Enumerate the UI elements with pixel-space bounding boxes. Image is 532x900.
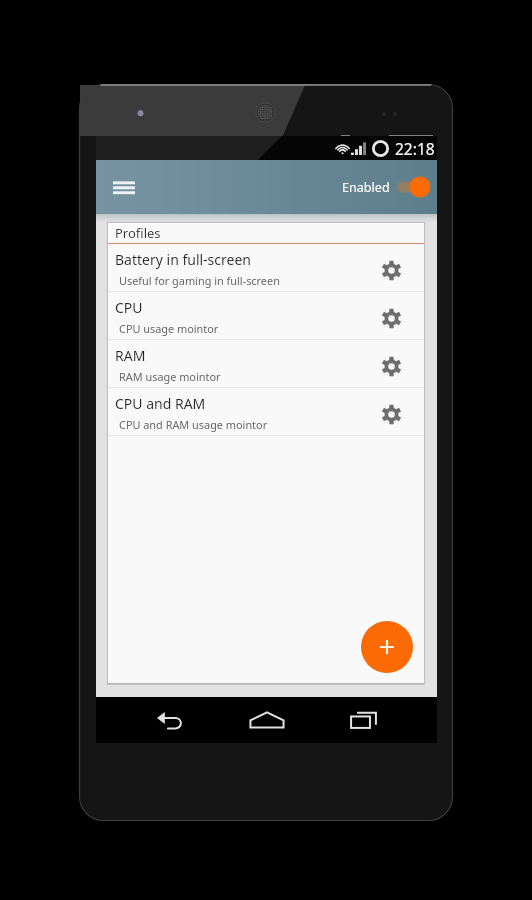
staticText: CPU and RAM usage mointor xyxy=(119,417,268,432)
staticText: Enabled xyxy=(342,179,390,196)
button[interactable]: Battery in full-screen xyxy=(108,244,424,291)
button[interactable]: CPU xyxy=(108,292,424,339)
staticText: 22:18 xyxy=(395,138,435,159)
staticText: CPU usage mointor xyxy=(119,321,219,336)
staticText: RAM usage mointor xyxy=(119,369,221,384)
button[interactable]: Open navigation drawer xyxy=(104,167,144,207)
button[interactable]: Back xyxy=(147,697,193,743)
staticText: Useful for gaming in full-screen xyxy=(119,273,280,288)
button[interactable]: Recent apps xyxy=(340,697,386,743)
button[interactable]: RAM xyxy=(108,340,424,387)
staticText: CPU xyxy=(115,298,143,317)
staticText: Profiles xyxy=(115,224,161,242)
button[interactable]: CPU and RAM xyxy=(108,388,424,435)
staticText: RAM xyxy=(115,346,146,365)
button[interactable]: Add profile xyxy=(361,621,413,673)
button[interactable]: Settings for Battery in full-screen xyxy=(378,249,404,291)
button[interactable]: Enabled xyxy=(342,176,431,198)
button[interactable]: Settings for CPU xyxy=(378,297,404,339)
button[interactable]: Home xyxy=(244,697,290,743)
staticText: Battery in full-screen xyxy=(115,250,251,269)
button[interactable]: Settings for CPU and RAM xyxy=(378,393,404,435)
button[interactable]: Settings for RAM xyxy=(378,345,404,387)
staticText: CPU and RAM xyxy=(115,394,206,413)
